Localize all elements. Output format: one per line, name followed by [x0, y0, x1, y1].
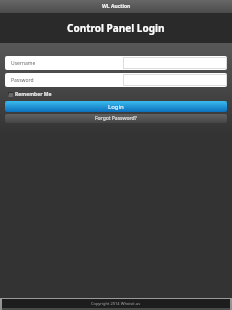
staticText: Control Panel Login	[67, 21, 165, 35]
button[interactable]: Login	[5, 101, 227, 112]
button[interactable]: Remember Me	[5, 91, 52, 98]
staticText: WL Auction	[102, 3, 131, 10]
staticText: Login	[108, 103, 124, 111]
staticText: Remember Me	[15, 91, 52, 98]
staticText: Username	[11, 60, 36, 67]
staticText: Password	[11, 77, 34, 84]
staticText: Copyright 2014 Whoisit.us	[91, 301, 141, 306]
button[interactable]: Forgot Password?	[5, 114, 227, 123]
button[interactable]: Password	[5, 73, 227, 87]
staticText: Forgot Password?	[95, 115, 137, 122]
button[interactable]: Username	[5, 56, 227, 70]
